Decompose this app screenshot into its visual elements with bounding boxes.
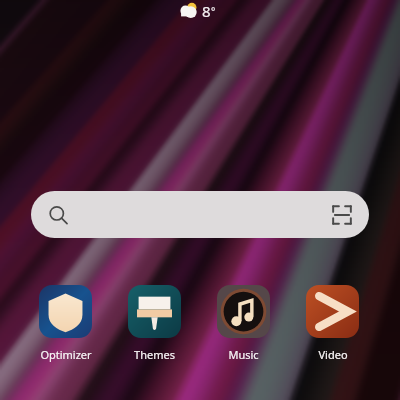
button[interactable]: Search — [31, 191, 369, 238]
other: Search — [48, 205, 68, 225]
staticText: Themes — [134, 347, 175, 362]
staticText: ° — [211, 4, 216, 18]
button[interactable]: Music — [199, 285, 288, 362]
staticText: Music — [228, 347, 259, 362]
staticText: 8 — [202, 1, 211, 21]
button[interactable]: Themes — [110, 285, 199, 362]
button[interactable]: Optimizer — [21, 285, 110, 362]
staticText: Optimizer — [40, 347, 92, 362]
button[interactable]: Scan — [329, 202, 355, 228]
staticText: Video — [318, 347, 348, 362]
button[interactable]: Video — [288, 285, 377, 362]
